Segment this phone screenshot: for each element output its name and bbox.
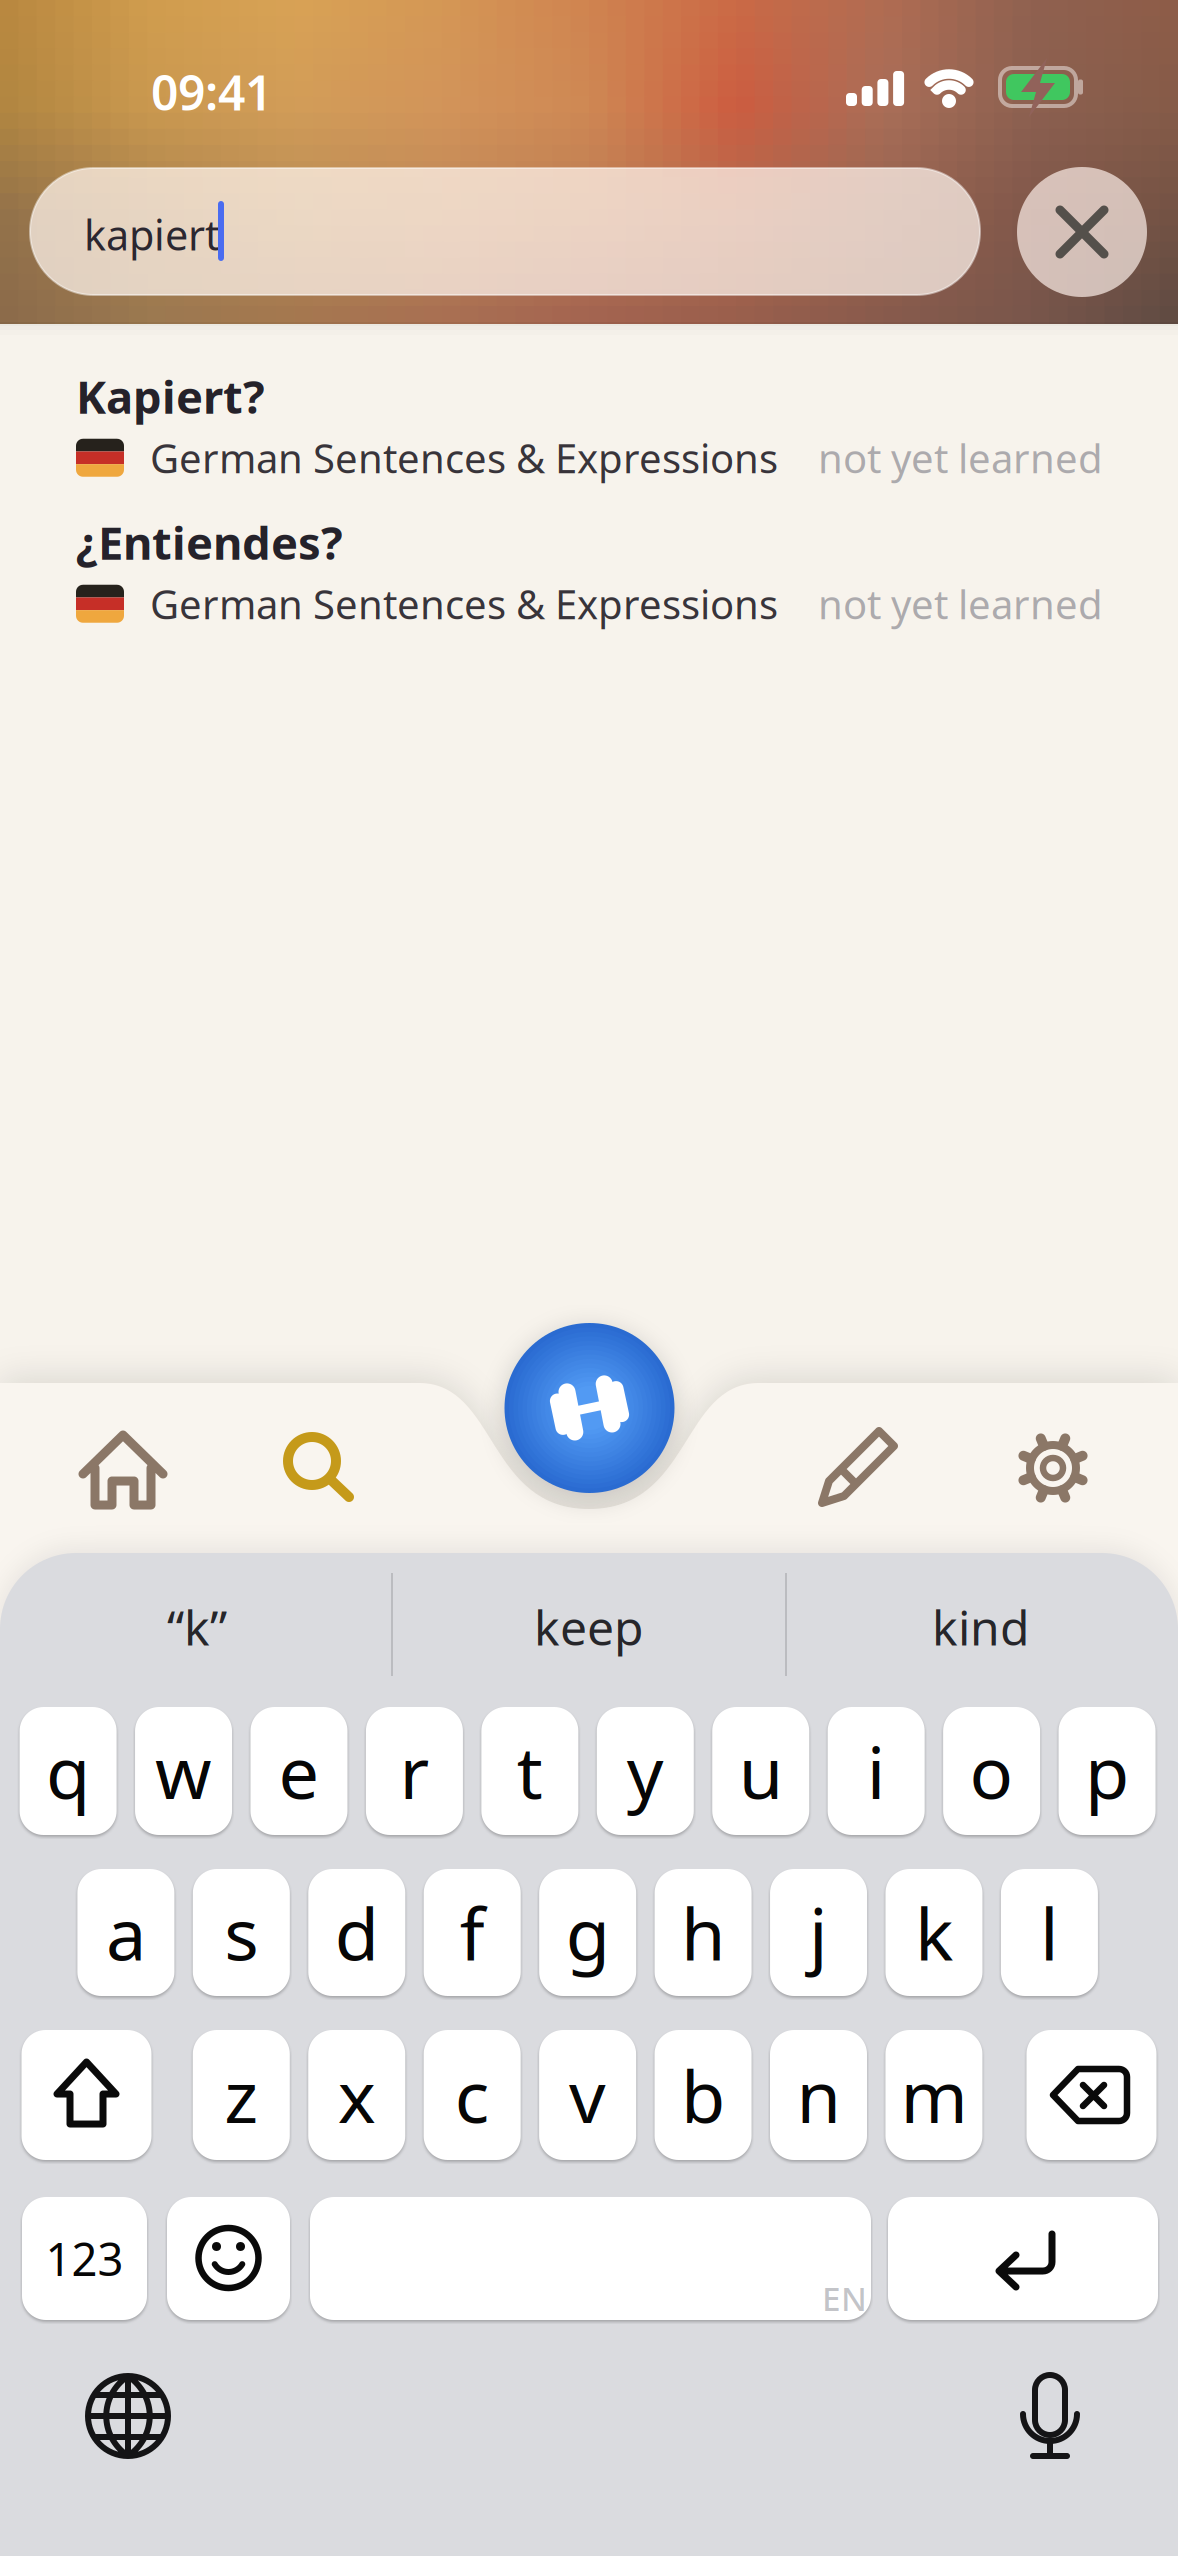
button[interactable]: o	[943, 1707, 1040, 1835]
button[interactable]: h	[655, 1869, 752, 1996]
staticText: t	[517, 1723, 543, 1819]
button[interactable]: Write	[798, 1415, 918, 1525]
button[interactable]: f	[424, 1869, 521, 1996]
staticText: w	[155, 1723, 212, 1819]
button[interactable]: Space	[310, 2197, 871, 2320]
button[interactable]: Search field	[30, 168, 980, 295]
staticText: 123	[45, 2228, 123, 2289]
staticText: EN	[822, 2276, 867, 2320]
button[interactable]: i	[828, 1707, 925, 1835]
staticText: German Sentences & Expressions	[150, 577, 778, 630]
button[interactable]: 123	[22, 2197, 147, 2320]
button[interactable]: t	[481, 1707, 578, 1835]
button[interactable]: y	[597, 1707, 694, 1835]
staticText: not yet learned	[818, 577, 1103, 630]
staticText: b	[681, 2047, 725, 2143]
button[interactable]: z	[193, 2030, 290, 2160]
button[interactable]: d	[308, 1869, 405, 1996]
button[interactable]: p	[1059, 1707, 1156, 1835]
staticText: q	[46, 1723, 90, 1819]
button[interactable]: v	[539, 2030, 636, 2160]
button[interactable]: keep	[394, 1595, 784, 1659]
button[interactable]: l	[1001, 1869, 1098, 1996]
button[interactable]: Practice	[504, 1323, 674, 1493]
button[interactable]: j	[770, 1869, 867, 1996]
staticText: s	[224, 1885, 258, 1980]
button[interactable]: Search	[255, 1415, 375, 1525]
button[interactable]: k	[885, 1869, 982, 1996]
button[interactable]: n	[770, 2030, 867, 2160]
staticText: kind	[932, 1595, 1030, 1659]
button[interactable]: Emoji	[167, 2197, 290, 2320]
staticText: j	[809, 1885, 828, 1980]
staticText: ¿Entiendes?	[76, 512, 343, 572]
button[interactable]: Dictate	[995, 2361, 1105, 2471]
staticText: y	[627, 1723, 664, 1819]
button[interactable]: m	[885, 2030, 982, 2160]
button[interactable]: c	[424, 2030, 521, 2160]
staticText: e	[278, 1723, 319, 1819]
button[interactable]: kind	[786, 1595, 1176, 1659]
staticText: Kapiert?	[76, 366, 265, 426]
staticText: l	[1040, 1885, 1059, 1980]
staticText: d	[335, 1885, 379, 1980]
button[interactable]: a	[77, 1869, 174, 1996]
staticText: n	[796, 2047, 840, 2143]
staticText: f	[460, 1885, 485, 1980]
staticText: o	[970, 1723, 1014, 1819]
staticText: a	[106, 1885, 146, 1980]
staticText: z	[224, 2047, 258, 2143]
button[interactable]: q	[20, 1707, 117, 1835]
button[interactable]: s	[193, 1869, 290, 1996]
staticText: “k”	[167, 1595, 227, 1659]
staticText: v	[569, 2047, 606, 2143]
button[interactable]: g	[539, 1869, 636, 1996]
button[interactable]: b	[655, 2030, 752, 2160]
staticText: x	[338, 2047, 376, 2143]
button[interactable]: Return	[888, 2197, 1158, 2320]
staticText: 09:41	[151, 60, 272, 124]
button[interactable]: w	[135, 1707, 232, 1835]
button[interactable]: Delete	[1026, 2030, 1156, 2160]
staticText: German Sentences & Expressions	[150, 431, 778, 484]
button[interactable]: Next keyboard	[73, 2361, 183, 2471]
button[interactable]: e	[250, 1707, 347, 1835]
staticText: g	[566, 1885, 610, 1980]
button[interactable]: u	[712, 1707, 809, 1835]
staticText: u	[739, 1723, 783, 1819]
button[interactable]: Shift	[21, 2030, 151, 2160]
staticText: h	[681, 1885, 725, 1980]
staticText: not yet learned	[818, 431, 1103, 484]
staticText: m	[900, 2047, 967, 2143]
button[interactable]: r	[366, 1707, 463, 1835]
staticText: i	[867, 1723, 886, 1819]
staticText: p	[1085, 1723, 1129, 1819]
button[interactable]: “k”	[2, 1595, 392, 1659]
button[interactable]: Home	[63, 1415, 183, 1525]
staticText: keep	[534, 1595, 644, 1659]
button[interactable]: ¿Entiendes?	[76, 512, 1103, 630]
staticText: c	[455, 2047, 490, 2143]
button[interactable]: x	[308, 2030, 405, 2160]
staticText: k	[915, 1885, 953, 1980]
staticText: r	[399, 1723, 429, 1819]
button[interactable]: Clear search	[1017, 167, 1147, 297]
button[interactable]: Kapiert?	[76, 366, 1103, 484]
staticText: kapiert	[84, 207, 220, 262]
button[interactable]: Settings	[995, 1415, 1115, 1525]
